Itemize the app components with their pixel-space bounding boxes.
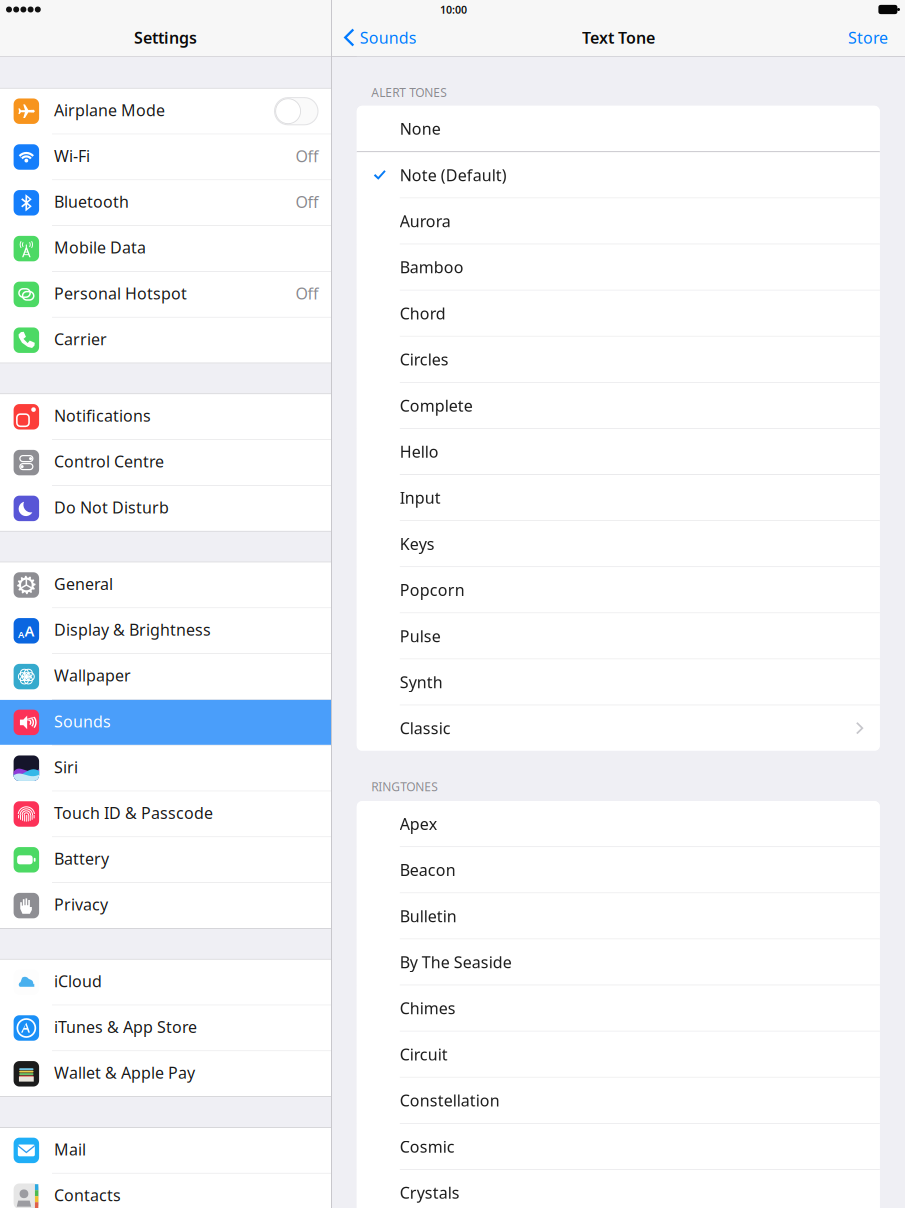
staticText: Circuit bbox=[400, 1044, 448, 1065]
staticText: ALERT TONES bbox=[371, 84, 447, 100]
button[interactable]: Store bbox=[848, 19, 905, 56]
button[interactable]: Mobile Data bbox=[0, 226, 331, 271]
staticText: Siri bbox=[54, 756, 78, 778]
button[interactable]: Note (Default) bbox=[357, 152, 880, 198]
button[interactable]: Hello bbox=[357, 429, 880, 474]
button[interactable]: Bulletin bbox=[357, 893, 880, 939]
staticText: Carrier bbox=[54, 328, 107, 350]
staticText: Contacts bbox=[54, 1184, 121, 1206]
staticText: Bluetooth bbox=[54, 191, 129, 212]
button[interactable]: Chimes bbox=[357, 985, 880, 1031]
staticText: Touch ID & Passcode bbox=[54, 802, 213, 823]
staticText: Airplane Mode bbox=[54, 99, 165, 121]
staticText: Settings bbox=[134, 27, 197, 48]
staticText: Personal Hotspot bbox=[54, 283, 187, 304]
staticText: Control Centre bbox=[54, 451, 164, 472]
button[interactable]: Complete bbox=[357, 383, 880, 428]
staticText: Classic bbox=[400, 717, 451, 739]
staticText: Wi-Fi bbox=[54, 145, 90, 166]
button[interactable]: Constellation bbox=[357, 1078, 880, 1123]
button[interactable]: Siri bbox=[0, 746, 331, 791]
staticText: Complete bbox=[400, 395, 473, 416]
button[interactable]: Off bbox=[0, 134, 331, 179]
staticText: Bamboo bbox=[400, 256, 464, 278]
button[interactable]: Control Centre bbox=[0, 440, 331, 485]
button[interactable]: Contacts bbox=[0, 1174, 331, 1208]
staticText: 10:00 bbox=[440, 2, 467, 17]
staticText: Keys bbox=[400, 533, 435, 554]
button[interactable]: Carrier bbox=[0, 318, 331, 363]
staticText: Pulse bbox=[400, 625, 441, 646]
staticText: Circles bbox=[400, 349, 449, 370]
staticText: Crystals bbox=[400, 1182, 460, 1203]
staticText: A bbox=[25, 621, 35, 641]
button[interactable]: None bbox=[357, 106, 880, 151]
staticText: Sounds bbox=[54, 711, 111, 732]
button[interactable]: Bamboo bbox=[357, 244, 880, 290]
staticText: By The Seaside bbox=[400, 951, 512, 973]
staticText: iTunes & App Store bbox=[54, 1016, 197, 1037]
staticText: Constellation bbox=[400, 1090, 500, 1111]
staticText: Chord bbox=[400, 303, 446, 324]
staticText: Sounds bbox=[360, 27, 417, 48]
button[interactable]: Circuit bbox=[357, 1032, 880, 1077]
staticText: Notifications bbox=[54, 405, 151, 426]
staticText: Store bbox=[848, 27, 888, 48]
button[interactable]: Touch ID & Passcode bbox=[0, 791, 331, 836]
button[interactable]: Off bbox=[0, 180, 331, 225]
button[interactable]: Sounds bbox=[332, 19, 417, 56]
button[interactable]: Popcorn bbox=[357, 567, 880, 612]
staticText: Input bbox=[400, 487, 441, 508]
staticText: Hello bbox=[400, 441, 439, 462]
button[interactable]: Classic bbox=[357, 705, 880, 751]
staticText: Popcorn bbox=[400, 579, 465, 600]
staticText: Beacon bbox=[400, 859, 456, 880]
staticText: Cosmic bbox=[400, 1136, 455, 1157]
staticText: None bbox=[400, 118, 441, 139]
button[interactable]: Circles bbox=[357, 337, 880, 382]
staticText: Mail bbox=[54, 1139, 86, 1160]
button[interactable]: Pulse bbox=[357, 613, 880, 659]
staticText: Synth bbox=[400, 671, 443, 693]
staticText: Battery bbox=[54, 848, 109, 869]
staticText: Off bbox=[295, 145, 318, 167]
button[interactable]: Off bbox=[0, 272, 331, 317]
staticText: Note (Default) bbox=[400, 164, 507, 185]
staticText: Apex bbox=[400, 813, 437, 834]
button[interactable]: Do Not Disturb bbox=[0, 486, 331, 531]
button[interactable]: Synth bbox=[357, 659, 880, 705]
staticText: Aurora bbox=[400, 210, 451, 232]
staticText: Wallpaper bbox=[54, 665, 131, 686]
button[interactable]: Keys bbox=[357, 521, 880, 566]
button[interactable]: iTunes & App Store bbox=[0, 1005, 331, 1050]
button[interactable]: By The Seaside bbox=[357, 939, 880, 985]
button[interactable]: Wallet & Apple Pay bbox=[0, 1051, 331, 1096]
button[interactable]: A bbox=[0, 608, 331, 653]
button[interactable]: General bbox=[0, 562, 331, 607]
button[interactable]: Apex bbox=[357, 801, 880, 846]
button[interactable]: iCloud bbox=[0, 960, 331, 1005]
button[interactable]: Privacy bbox=[0, 883, 331, 928]
staticText: Privacy bbox=[54, 894, 108, 915]
button[interactable]: Input bbox=[357, 475, 880, 520]
staticText: Text Tone bbox=[582, 27, 655, 48]
button[interactable]: Mail bbox=[0, 1128, 331, 1173]
button[interactable]: Battery bbox=[0, 837, 331, 882]
button[interactable]: Sounds bbox=[0, 700, 331, 745]
button[interactable]: Beacon bbox=[357, 847, 880, 892]
staticText: RINGTONES bbox=[371, 779, 438, 795]
staticText: Do Not Disturb bbox=[54, 497, 169, 518]
button[interactable]: Airplane Mode bbox=[0, 89, 331, 134]
staticText: Wallet & Apple Pay bbox=[54, 1062, 195, 1083]
staticText: General bbox=[54, 573, 113, 594]
staticText: Off bbox=[295, 283, 318, 304]
staticText: Bulletin bbox=[400, 905, 457, 926]
button[interactable]: Aurora bbox=[357, 198, 880, 244]
button[interactable]: Cosmic bbox=[357, 1124, 880, 1169]
staticText: Mobile Data bbox=[54, 237, 146, 258]
button[interactable]: Notifications bbox=[0, 394, 331, 439]
button[interactable]: Crystals bbox=[357, 1170, 880, 1208]
button[interactable]: Chord bbox=[357, 291, 880, 336]
button[interactable]: Wallpaper bbox=[0, 654, 331, 699]
staticText: Display & Brightness bbox=[54, 619, 211, 640]
